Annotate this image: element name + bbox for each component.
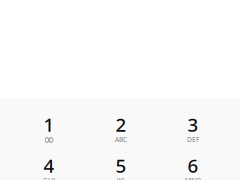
button[interactable]: 2 xyxy=(85,108,157,149)
staticText: 2 xyxy=(115,112,126,137)
staticText: 6 xyxy=(187,153,198,178)
staticText: MNO xyxy=(185,176,201,180)
staticText: 1 xyxy=(43,112,54,137)
staticText: DEF xyxy=(187,135,199,144)
staticText: JKL xyxy=(116,176,125,180)
button[interactable]: 4 xyxy=(13,149,85,180)
staticText: ∞ xyxy=(43,132,54,147)
staticText: 5 xyxy=(115,153,126,178)
staticText: ABC xyxy=(115,135,127,144)
staticText: 4 xyxy=(43,153,54,178)
button[interactable]: 6 xyxy=(157,149,229,180)
button[interactable]: 5 xyxy=(85,149,157,180)
staticText: GHI xyxy=(43,176,55,180)
button[interactable]: 3 xyxy=(157,108,229,149)
staticText: 3 xyxy=(187,112,198,137)
button[interactable]: 1 xyxy=(13,108,85,149)
